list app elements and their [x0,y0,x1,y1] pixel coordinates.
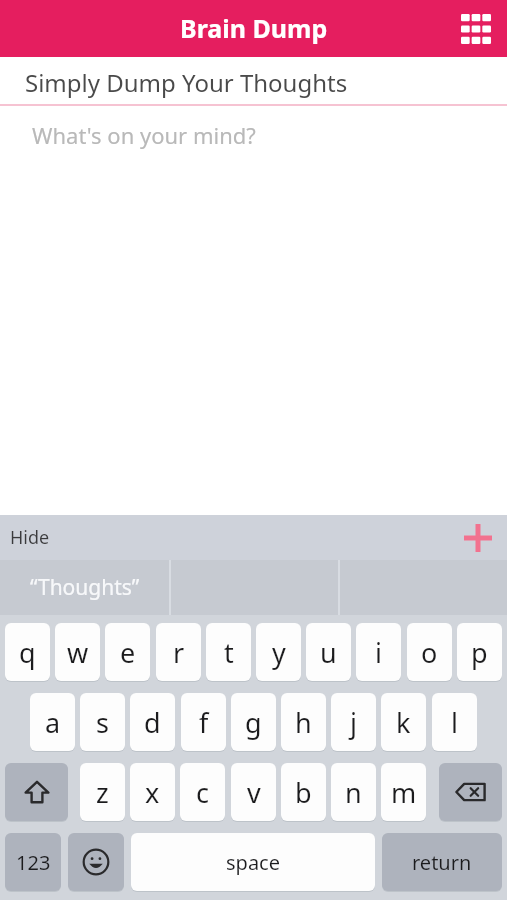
button[interactable]: m [381,763,426,821]
staticText: d [144,704,161,741]
staticText: u [320,634,337,671]
staticText: 123 [16,849,51,876]
button[interactable]: Emoji [68,833,124,891]
staticText: x [145,774,160,811]
staticText: Brain Dump [180,11,328,45]
button[interactable]: x [130,763,175,821]
button[interactable]: d [130,693,175,751]
staticText: r [173,634,185,671]
button[interactable]: j [331,693,376,751]
staticText: l [451,704,458,741]
button[interactable]: t [206,623,251,681]
staticText: o [421,634,438,671]
button[interactable]: h [281,693,326,751]
staticText: z [96,774,109,811]
button[interactable]: “Thoughts” [0,560,169,615]
button[interactable]: Backspace [439,763,502,821]
button[interactable]: y [256,623,301,681]
staticText: k [396,704,411,741]
button[interactable]: q [5,623,50,681]
button[interactable]: g [231,693,276,751]
button[interactable]: w [55,623,100,681]
button[interactable]: Menu grid [453,6,499,52]
staticText: a [45,704,61,741]
staticText: Simply Dump Your Thoughts [25,66,348,99]
button[interactable]: 123 [5,833,61,891]
staticText: m [391,774,417,811]
button[interactable]: f [181,693,226,751]
staticText: q [19,634,36,671]
staticText: “Thoughts” [30,573,140,602]
button[interactable]: e [105,623,150,681]
button[interactable]: space [131,833,375,891]
button[interactable]: p [457,623,502,681]
staticText: c [196,774,209,811]
button[interactable]: Hide [10,525,50,550]
staticText: space [226,849,280,876]
button[interactable]: n [331,763,376,821]
button[interactable]: u [306,623,351,681]
staticText: n [345,774,362,811]
staticText: i [375,634,382,671]
staticText: h [295,704,312,741]
staticText: Hide [10,525,50,550]
staticText: v [247,774,261,811]
button[interactable]: b [281,763,326,821]
button[interactable]: Shift [5,763,68,821]
staticText: b [295,774,312,811]
staticText: p [471,634,488,671]
staticText: y [272,634,286,671]
staticText: f [199,704,209,741]
button[interactable]: return [382,833,502,891]
staticText: s [96,704,109,741]
staticText: t [224,634,234,671]
button[interactable]: r [156,623,201,681]
button[interactable]: i [356,623,401,681]
staticText: e [120,634,136,671]
button[interactable]: l [432,693,477,751]
button[interactable]: c [180,763,225,821]
staticText: w [67,634,89,671]
button[interactable]: v [231,763,276,821]
staticText: What's on your mind? [32,120,256,150]
staticText: j [350,704,357,741]
button[interactable]: a [30,693,75,751]
button[interactable]: Add [457,517,499,559]
staticText: return [412,849,472,876]
button[interactable]: k [381,693,426,751]
button[interactable]: s [80,693,125,751]
button[interactable]: o [407,623,452,681]
staticText: g [245,704,262,741]
button[interactable]: z [80,763,125,821]
